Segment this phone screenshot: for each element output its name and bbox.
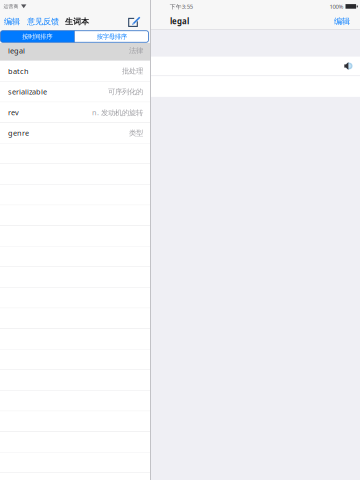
staticText: legal	[8, 46, 25, 56]
staticText: n. 发动机的旋转	[92, 107, 143, 117]
staticText: batch	[8, 66, 29, 76]
staticText: 编辑	[334, 16, 350, 26]
button[interactable]: 编辑	[0, 13, 24, 30]
staticText: 类型	[129, 128, 143, 137]
staticText: 按字母排序	[97, 32, 127, 41]
button[interactable]: rev	[0, 102, 150, 122]
button[interactable]: 按时间排序	[1, 31, 74, 42]
staticText: 按时间排序	[22, 32, 52, 41]
staticText: 批处理	[122, 66, 143, 76]
staticText: 生词本	[65, 16, 89, 27]
button[interactable]: Pronounce	[340, 57, 358, 76]
staticText: 编辑	[4, 16, 20, 27]
staticText: serializable	[8, 87, 47, 97]
button[interactable]: batch	[0, 61, 150, 81]
button[interactable]: 意见反馈	[24, 13, 62, 30]
staticText: 100%	[329, 2, 343, 10]
staticText: genre	[8, 128, 29, 138]
staticText: rev	[8, 107, 19, 117]
staticText: 可序列化的	[108, 87, 143, 96]
button[interactable]: New word	[124, 13, 145, 30]
staticText: legal	[170, 16, 189, 27]
staticText: 运营商	[3, 3, 18, 9]
staticText: 意见反馈	[27, 16, 59, 27]
staticText: 法律	[129, 46, 143, 55]
button[interactable]: 编辑	[329, 13, 355, 29]
staticText: 下午3:55	[170, 2, 193, 10]
button[interactable]: 按字母排序	[75, 31, 148, 42]
button[interactable]: genre	[0, 123, 150, 143]
button[interactable]: legal	[0, 40, 150, 61]
button[interactable]: serializable	[0, 82, 150, 102]
